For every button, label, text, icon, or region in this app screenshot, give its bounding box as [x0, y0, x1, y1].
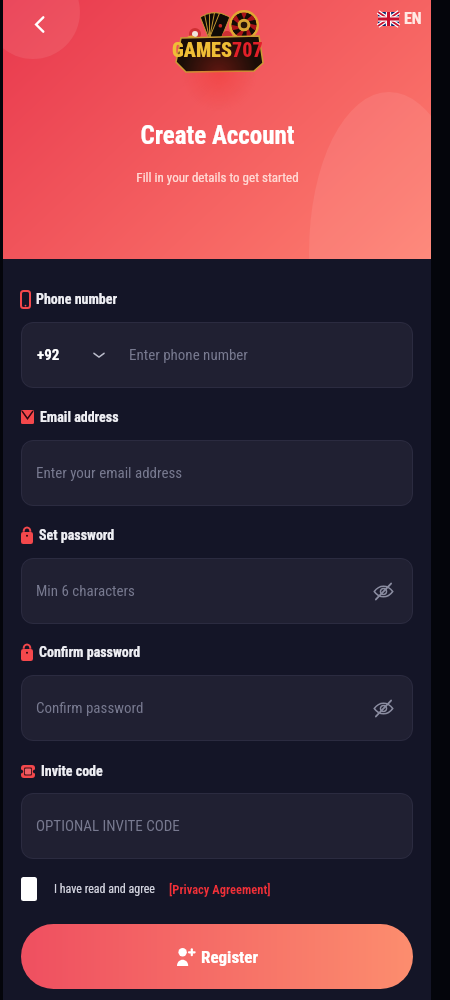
button[interactable]: OPTIONAL INVITE CODE — [21, 793, 413, 859]
button[interactable]: Enter your email address — [21, 440, 413, 506]
staticText: Invite code — [41, 763, 103, 779]
staticText: Register — [201, 947, 259, 967]
staticText: OPTIONAL INVITE CODE — [36, 817, 180, 835]
staticText: Confirm password — [36, 699, 144, 717]
staticText: Min 6 characters — [36, 582, 135, 600]
staticText: Enter phone number — [129, 346, 248, 364]
button[interactable]: [Privacy Agreement] — [169, 882, 271, 897]
button[interactable]: I have read and agree — [21, 876, 413, 902]
staticText: 707 — [232, 38, 263, 61]
button[interactable]: Min 6 characters — [21, 558, 413, 624]
staticText: Enter your email address — [36, 464, 183, 482]
button[interactable]: Show password — [368, 576, 398, 606]
staticText: Email address — [40, 409, 119, 425]
staticText: EN — [404, 9, 422, 28]
button[interactable]: Change language, English — [373, 5, 427, 32]
staticText: Phone number — [36, 291, 118, 307]
button[interactable]: Confirm password — [21, 675, 413, 741]
button[interactable]: Register — [21, 924, 413, 989]
staticText: Confirm password — [39, 644, 141, 660]
staticText: GAMES — [172, 38, 232, 61]
staticText: +92 — [37, 346, 60, 364]
staticText: I have read and agree — [54, 882, 155, 896]
staticText: Fill in your details to get started — [136, 170, 299, 185]
staticText: Set password — [39, 527, 115, 543]
staticText: Create Account — [140, 121, 295, 150]
button[interactable]: Country code +92 — [21, 322, 129, 388]
button[interactable]: Show password — [368, 693, 398, 723]
button[interactable]: Back — [21, 6, 57, 42]
